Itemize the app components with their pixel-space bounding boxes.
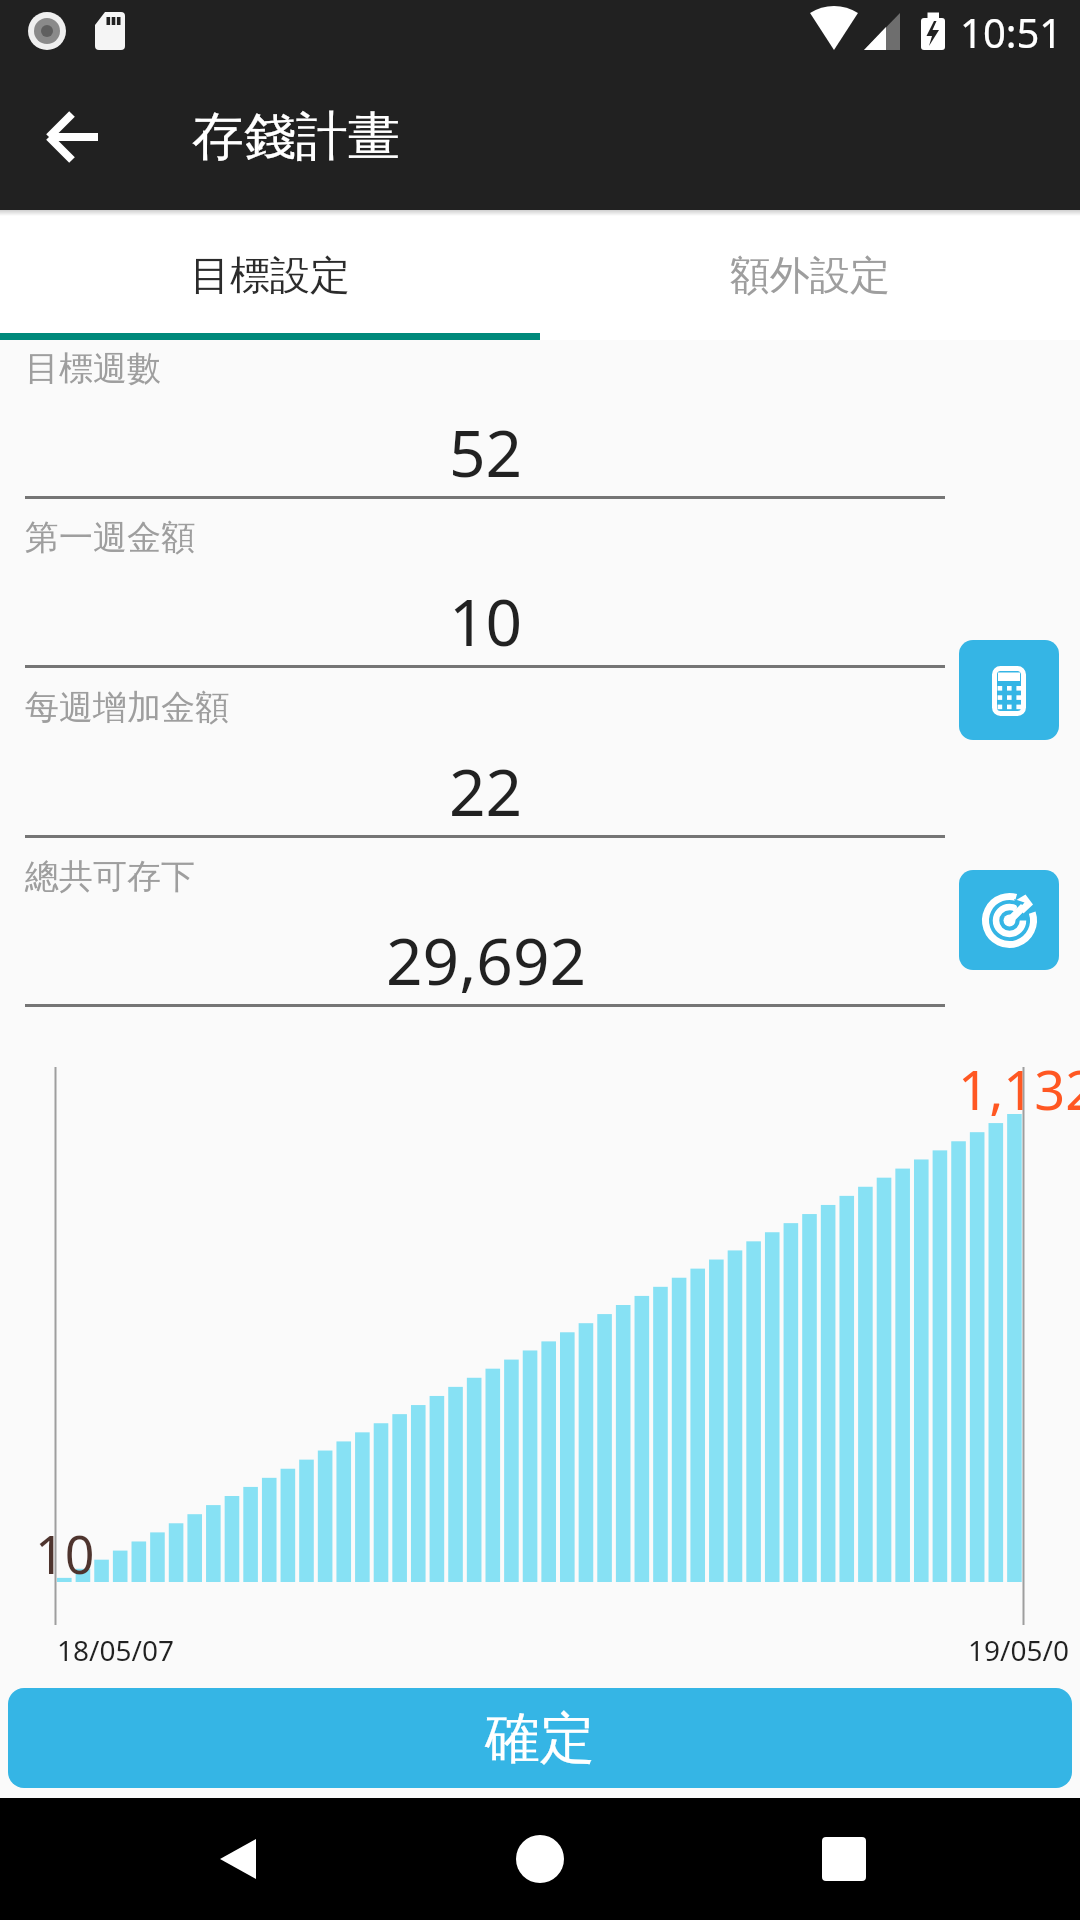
staticText: 52 xyxy=(449,409,523,496)
staticText: 10 xyxy=(35,1518,95,1582)
staticText: 10:51 xyxy=(960,5,1063,59)
button[interactable]: 29,692 xyxy=(25,910,947,1010)
button[interactable] xyxy=(192,1811,288,1907)
button[interactable]: 22 xyxy=(25,741,947,841)
staticText: 存錢計畫 xyxy=(192,104,400,170)
staticText: 22 xyxy=(449,748,523,835)
staticText: 29,692 xyxy=(386,917,587,1004)
staticText: 10 xyxy=(449,578,523,665)
button[interactable]: 額外設定 xyxy=(540,210,1080,340)
staticText: 目標設定 xyxy=(190,250,350,300)
button[interactable] xyxy=(25,89,121,185)
staticText: 目標週數 xyxy=(25,347,161,390)
staticText: 第一週金額 xyxy=(25,516,195,559)
staticText: 總共可存下 xyxy=(25,855,195,898)
button[interactable]: 52 xyxy=(25,402,947,502)
button[interactable]: 10 xyxy=(25,571,947,671)
button[interactable] xyxy=(492,1811,588,1907)
staticText: 1,132 xyxy=(958,1052,1080,1116)
staticText: 19/05/0 xyxy=(968,1631,1069,1669)
button[interactable] xyxy=(959,870,1059,970)
button[interactable]: 目標設定 xyxy=(0,210,540,340)
staticText: 18/05/07 xyxy=(57,1631,174,1669)
button[interactable]: 確定 xyxy=(8,1688,1072,1788)
button[interactable] xyxy=(796,1811,892,1907)
staticText: 確定 xyxy=(485,1704,595,1773)
staticText: 每週增加金額 xyxy=(25,686,229,729)
staticText: 額外設定 xyxy=(730,250,890,300)
button[interactable] xyxy=(959,640,1059,740)
